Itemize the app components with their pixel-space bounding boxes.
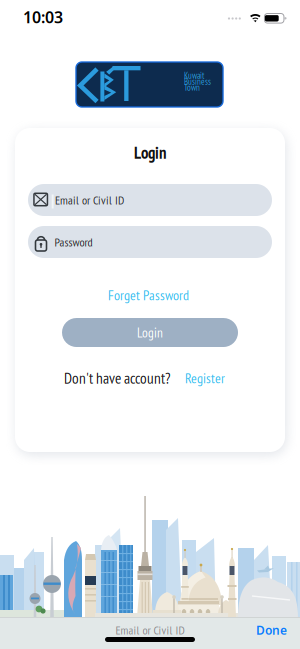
staticText: Kuwait: [184, 70, 204, 81]
staticText: Email or Civil ID: [55, 192, 124, 208]
staticText: 10:03: [23, 6, 63, 28]
staticText: Business: [184, 76, 211, 87]
staticText: Register: [185, 369, 225, 387]
staticText: Don't have account?: [64, 368, 170, 388]
staticText: Forget Password: [108, 286, 189, 304]
button[interactable]: Done: [256, 622, 287, 638]
staticText: Login: [134, 142, 166, 163]
staticText: Email or Civil ID: [115, 622, 184, 638]
button[interactable]: Forget Password: [108, 286, 189, 304]
staticText: Login: [137, 324, 163, 341]
button[interactable]: Password: [28, 226, 272, 258]
button[interactable]: Register: [185, 369, 225, 387]
staticText: Password: [54, 234, 92, 250]
button[interactable]: Email or Civil ID: [28, 184, 272, 216]
button[interactable]: Login: [62, 318, 238, 347]
staticText: Done: [256, 622, 287, 638]
staticText: Town: [184, 82, 200, 93]
